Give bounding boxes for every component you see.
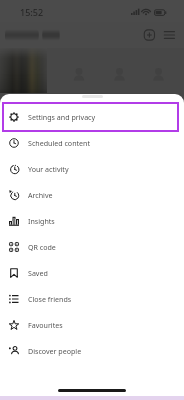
button[interactable]: Saved xyxy=(0,260,184,286)
button[interactable]: Scheduled content xyxy=(0,130,184,156)
staticText: Saved xyxy=(28,268,48,278)
staticText: 15:52 xyxy=(20,6,44,18)
staticText: Your activity xyxy=(28,164,69,174)
staticText: Favourites xyxy=(28,320,63,330)
button[interactable]: Your activity xyxy=(0,156,184,182)
button[interactable]: Discover people xyxy=(0,338,184,364)
button[interactable]: Favourites xyxy=(0,312,184,338)
staticText: Discover people xyxy=(28,346,82,356)
button[interactable]: Archive xyxy=(0,182,184,208)
staticText: Settings and privacy xyxy=(28,112,96,122)
staticText: Scheduled content xyxy=(28,138,91,148)
button[interactable]: Insights xyxy=(0,208,184,234)
staticText: Archive xyxy=(28,190,53,200)
staticText: Close friends xyxy=(28,294,72,304)
button[interactable]: Settings and privacy xyxy=(0,104,184,130)
button[interactable]: QR code xyxy=(0,234,184,260)
staticText: Insights xyxy=(28,216,55,226)
staticText: QR code xyxy=(28,242,56,252)
button[interactable]: Close friends xyxy=(0,286,184,312)
